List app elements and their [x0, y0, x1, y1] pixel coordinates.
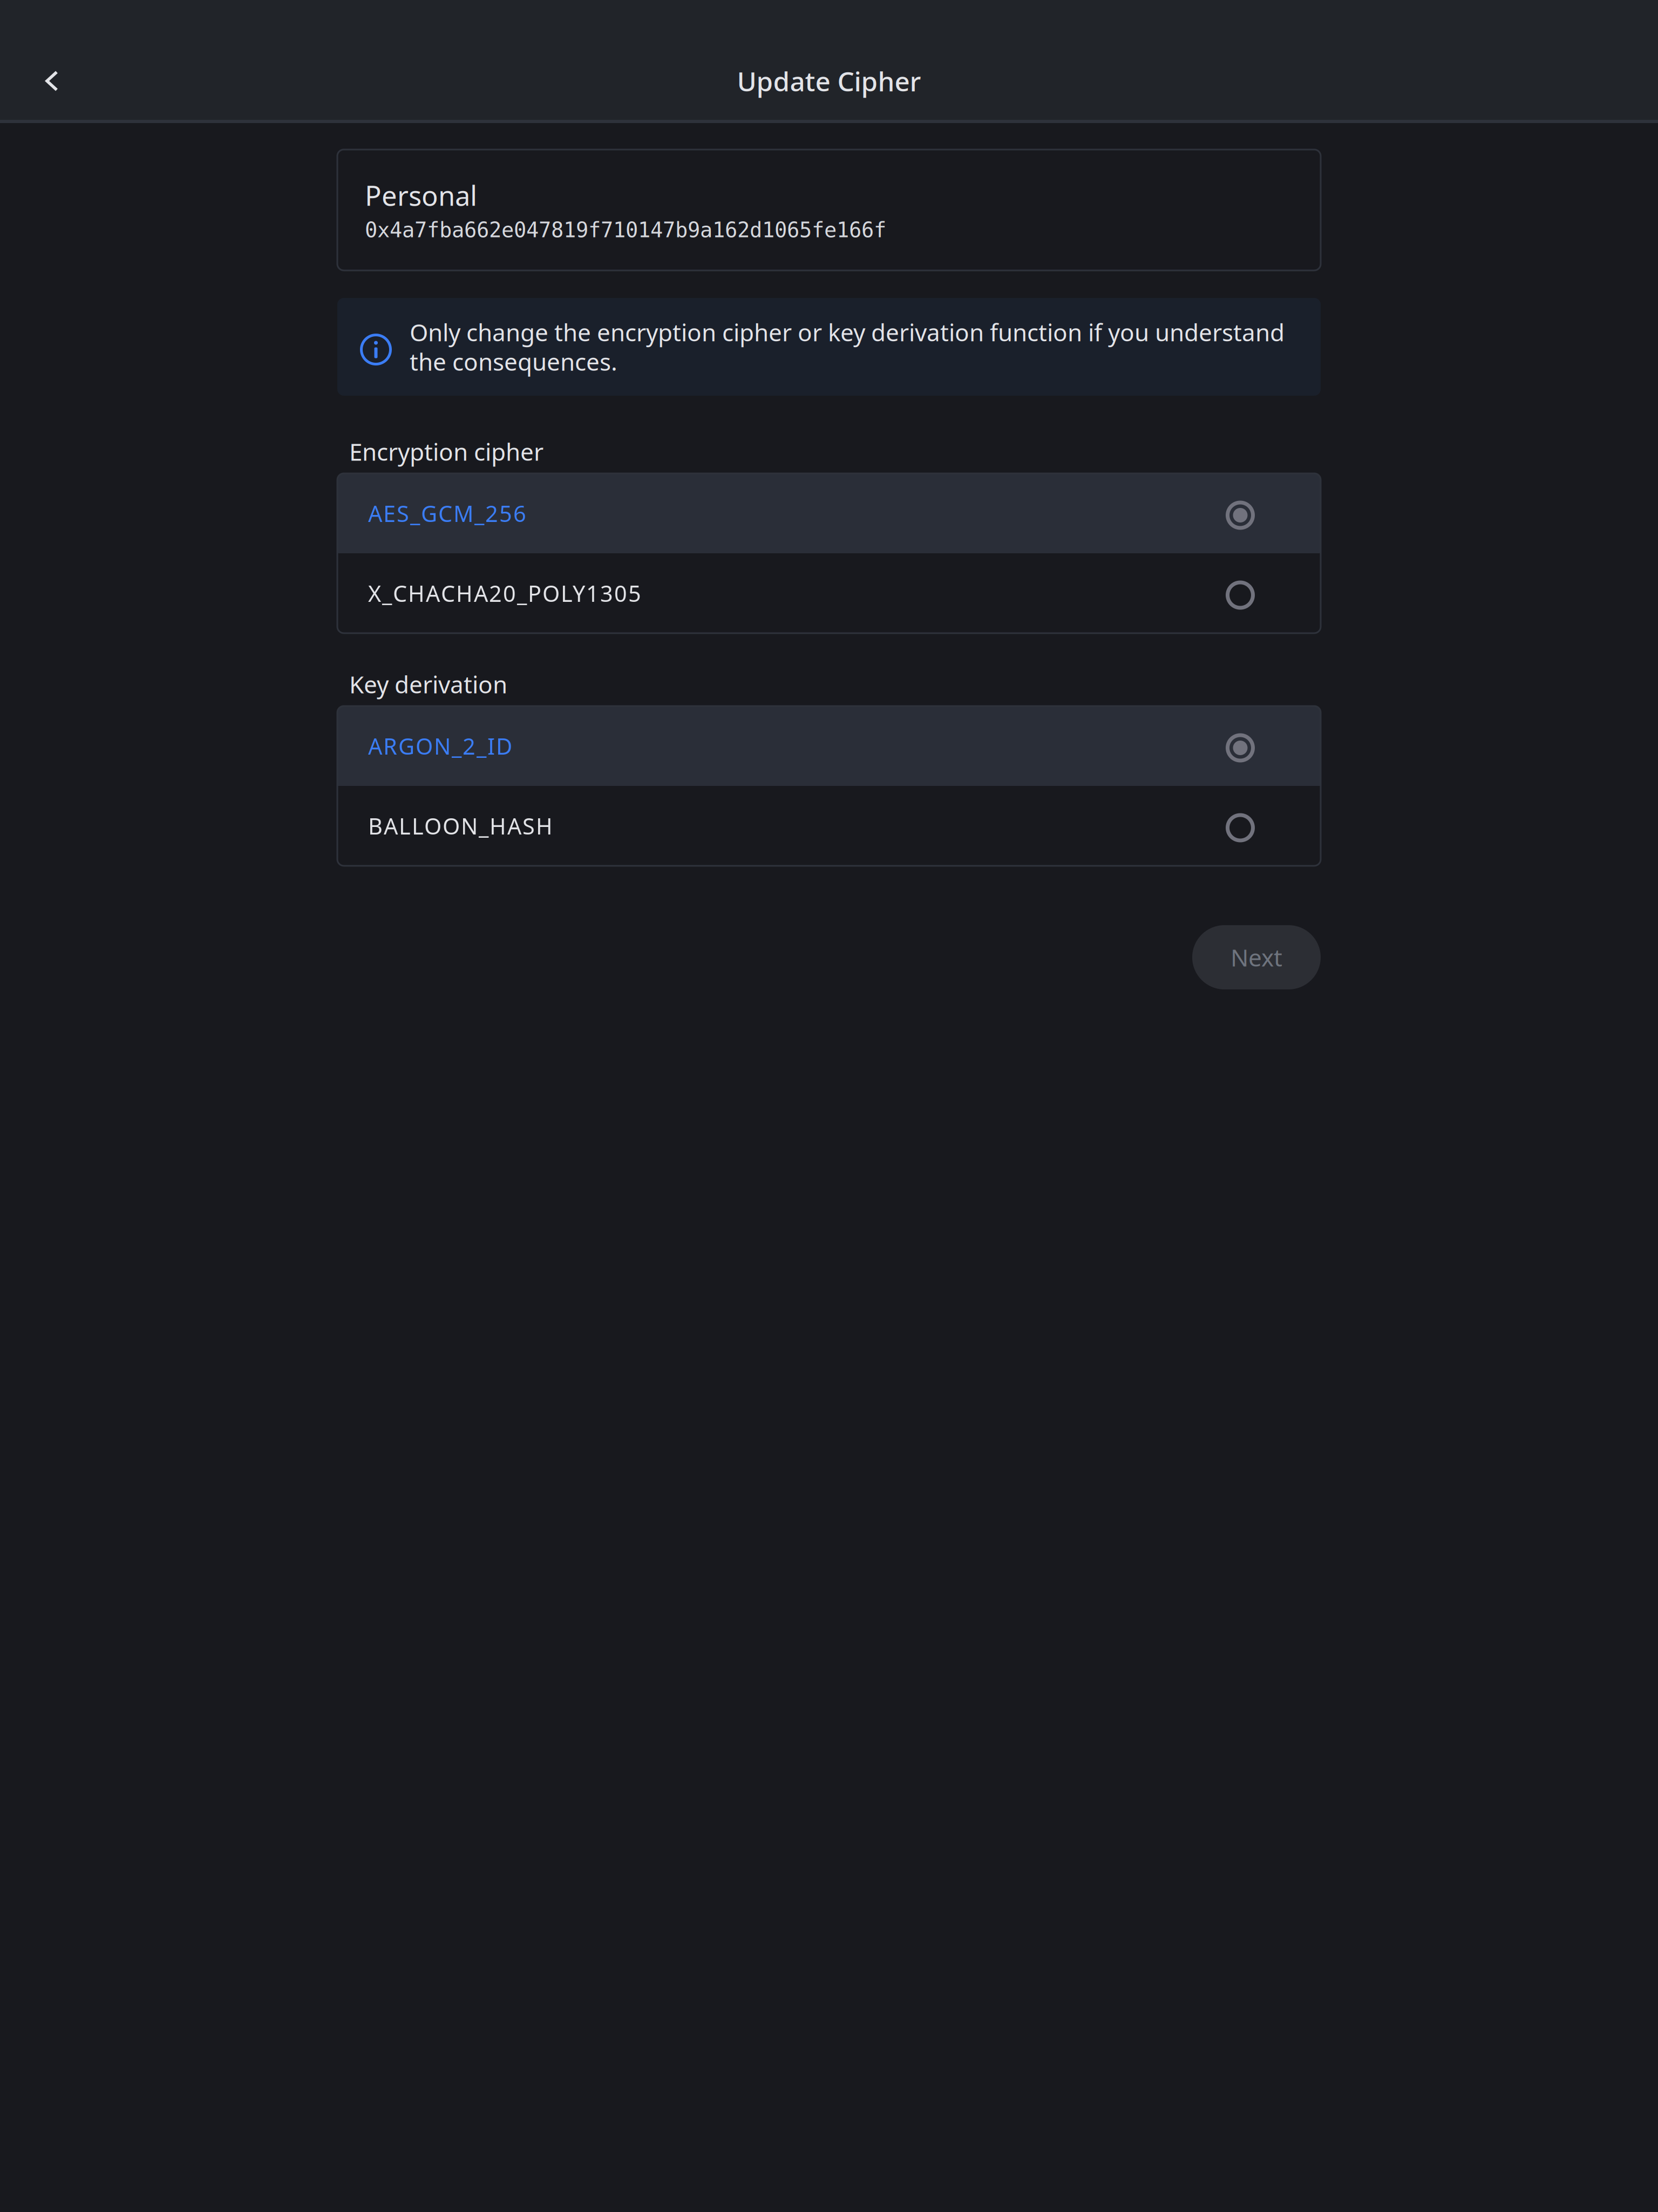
button[interactable]: X_CHACHA20_POLY1305 — [337, 553, 1321, 633]
staticText: Update Cipher — [737, 63, 921, 99]
staticText: Next — [1231, 942, 1282, 973]
staticText: Only change the encryption cipher or key… — [410, 316, 1285, 377]
staticText: Encryption cipher — [349, 436, 543, 467]
button[interactable]: Next — [1192, 925, 1321, 989]
staticText: ARGON_2_ID — [368, 731, 512, 761]
button[interactable]: BALLOON_HASH — [337, 786, 1321, 866]
staticText: Key derivation — [349, 668, 507, 700]
button[interactable]: Back — [17, 46, 86, 116]
staticText: AES_GCM_256 — [368, 499, 526, 528]
staticText: X_CHACHA20_POLY1305 — [368, 578, 641, 608]
button[interactable]: AES_GCM_256 — [337, 473, 1321, 553]
staticText: 0x4a7fba662e047819f710147b9a162d1065fe16… — [365, 218, 886, 242]
staticText: Personal — [365, 177, 477, 213]
staticText: BALLOON_HASH — [368, 811, 553, 841]
button[interactable]: ARGON_2_ID — [337, 706, 1321, 786]
